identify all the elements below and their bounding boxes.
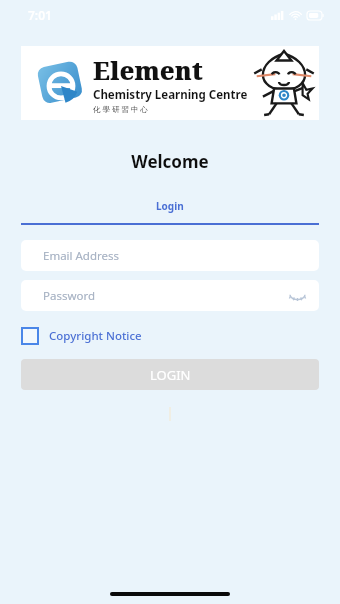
button[interactable]: Password [21,280,319,311]
staticText: 7:01 [28,7,52,23]
staticText: Element [93,53,203,87]
staticText: 化 學 研 習 中 心 [93,104,148,114]
staticText: Login [156,199,184,213]
staticText: Welcome [0,150,340,173]
button[interactable]: Show password [287,286,307,306]
button[interactable]: LOGIN [21,359,319,390]
staticText: LOGIN [150,366,191,384]
staticText: Password [43,288,96,304]
button[interactable]: Email Address [21,240,319,271]
button[interactable]: Copyright Notice [21,321,142,351]
staticText: Chemistry Learning Centre [93,87,248,103]
staticText: Email Address [43,248,120,264]
staticText: Copyright Notice [49,328,142,344]
button[interactable]: Login [21,195,319,217]
